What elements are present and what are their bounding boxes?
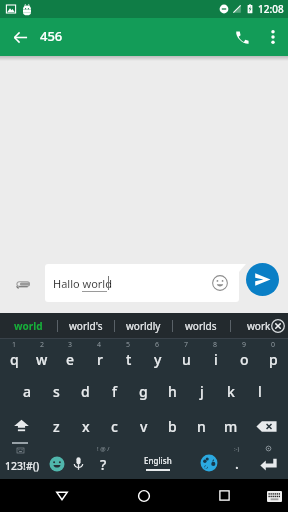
button[interactable]: g	[129, 374, 158, 409]
staticText: 123!#()	[5, 459, 40, 473]
staticText: 0	[271, 340, 276, 350]
button[interactable]: k	[216, 374, 245, 409]
staticText: worldly	[126, 319, 161, 333]
staticText: x	[82, 417, 90, 436]
staticText: 2	[40, 340, 45, 350]
staticText: v	[140, 417, 148, 436]
staticText: 4	[97, 340, 102, 350]
staticText: 3	[68, 340, 73, 350]
button[interactable]: Send	[246, 263, 279, 296]
button[interactable]: Voice input	[66, 444, 91, 479]
button[interactable]: worldly	[114, 313, 172, 338]
button[interactable]: d	[71, 374, 100, 409]
staticText: s	[53, 382, 60, 401]
button[interactable]: n	[187, 409, 216, 444]
button[interactable]: :-)	[224, 444, 249, 479]
button[interactable]: Shift	[0, 409, 42, 444]
staticText: d	[81, 382, 90, 401]
button[interactable]: 6	[143, 339, 172, 374]
button[interactable]: 8	[201, 339, 230, 374]
staticText: 12:08	[258, 2, 284, 16]
staticText: a	[23, 382, 32, 401]
staticText: m	[224, 417, 238, 436]
button[interactable]: 1	[0, 339, 28, 374]
staticText: l	[258, 382, 262, 401]
staticText: 9	[242, 340, 247, 350]
button[interactable]: Call	[226, 21, 258, 53]
button[interactable]: 7	[172, 339, 201, 374]
staticText: r	[97, 350, 103, 369]
button[interactable]: Emoji	[212, 275, 228, 291]
staticText: 6	[155, 340, 160, 350]
staticText: h	[168, 382, 177, 401]
staticText: y	[154, 350, 162, 369]
button[interactable]: world	[0, 313, 57, 338]
staticText: ?	[100, 455, 107, 474]
button[interactable]: 123!#()	[0, 444, 40, 479]
staticText: b	[168, 417, 177, 436]
button[interactable]: a	[13, 374, 42, 409]
button[interactable]: b	[158, 409, 187, 444]
button[interactable]: 9	[230, 339, 259, 374]
button[interactable]: More options	[258, 22, 288, 52]
button[interactable]: x	[71, 409, 100, 444]
button[interactable]: Attach file	[10, 270, 36, 296]
staticText: :-)	[234, 445, 240, 453]
button[interactable]: c	[100, 409, 129, 444]
staticText: j	[200, 382, 204, 401]
staticText: q	[10, 350, 19, 369]
staticText: n	[197, 417, 206, 436]
button[interactable]: Home	[127, 479, 161, 512]
button[interactable]: 0	[259, 339, 288, 374]
button[interactable]: 3	[56, 339, 85, 374]
staticText: t	[126, 350, 132, 369]
button[interactable]: m	[216, 409, 245, 444]
staticText: world	[14, 319, 43, 333]
button[interactable]: Back	[45, 479, 79, 512]
button[interactable]: Dismiss suggestions	[268, 317, 286, 335]
staticText: Hallo world	[53, 276, 112, 291]
button[interactable]: worlds	[172, 313, 230, 338]
staticText: e	[66, 350, 75, 369]
staticText: k	[227, 382, 235, 401]
staticText: p	[269, 350, 278, 369]
button[interactable]: Back	[4, 21, 36, 53]
button[interactable]: work	[230, 313, 288, 338]
staticText: ! @ /	[97, 445, 110, 453]
button[interactable]: v	[129, 409, 158, 444]
button[interactable]: Emoji keyboard	[40, 444, 66, 479]
staticText: world's	[69, 319, 103, 333]
button[interactable]: l	[245, 374, 274, 409]
button[interactable]: Recent apps	[207, 479, 241, 512]
staticText: g	[139, 382, 148, 401]
staticText: u	[182, 350, 191, 369]
button[interactable]: English	[116, 444, 199, 479]
staticText: 7	[184, 340, 189, 350]
button[interactable]: h	[158, 374, 187, 409]
button[interactable]: s	[42, 374, 71, 409]
button[interactable]: Backspace	[245, 409, 288, 444]
button[interactable]: j	[187, 374, 216, 409]
staticText: worlds	[185, 319, 217, 333]
button[interactable]: world's	[57, 313, 114, 338]
staticText: 8	[213, 340, 218, 350]
staticText: f	[112, 382, 117, 401]
button[interactable]: Change language	[199, 444, 224, 479]
staticText: English	[144, 455, 172, 466]
button[interactable]: 4	[85, 339, 114, 374]
button[interactable]: Enter	[249, 444, 288, 479]
button[interactable]: ! @ /	[91, 444, 116, 479]
staticText: 5	[126, 340, 131, 350]
staticText: z	[53, 417, 60, 436]
button[interactable]: 5	[114, 339, 143, 374]
button[interactable]: Show keyboard	[259, 481, 288, 511]
staticText: w	[36, 350, 48, 369]
staticText: c	[111, 417, 118, 436]
staticText: 456	[40, 27, 63, 45]
staticText: o	[240, 350, 249, 369]
button[interactable]: z	[42, 409, 71, 444]
button[interactable]: f	[100, 374, 129, 409]
button[interactable]: 2	[28, 339, 56, 374]
staticText: 1	[12, 340, 17, 350]
staticText: .	[235, 454, 239, 473]
